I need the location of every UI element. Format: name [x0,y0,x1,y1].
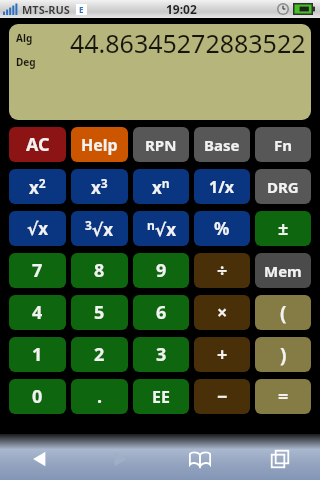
staticText: √x [27,217,49,240]
staticText: % [214,217,230,240]
button[interactable]: 7 [9,253,66,288]
button[interactable]: x2 [9,169,66,204]
button[interactable]: 1 [9,337,66,372]
button[interactable]: 4 [9,295,66,330]
staticText: ( [280,300,287,326]
staticText: MTS-RUS [22,2,70,17]
button[interactable]: Back [0,438,80,480]
staticText: + [217,342,228,367]
staticText: E [79,4,84,15]
staticText: 19:02 [166,1,197,17]
button[interactable]: Bookmarks [160,438,240,480]
staticText: 8 [94,258,105,283]
staticText: xn [152,175,170,199]
button[interactable]: 2 [71,337,128,372]
button[interactable]: 3√x [71,211,128,246]
staticText: . [97,384,103,409]
button[interactable]: Fn [255,127,311,162]
staticText: 1/x [209,176,235,198]
staticText: AC [26,132,50,157]
button[interactable]: √x [9,211,66,246]
staticText: 3 [156,342,167,367]
staticText: 5 [94,300,105,325]
staticText: 44.86345272883522 [70,26,306,60]
button[interactable]: . [71,379,128,414]
button[interactable]: xn [133,169,189,204]
staticText: 9 [156,258,167,283]
staticText: × [217,300,228,325]
staticText: 4 [32,300,43,325]
staticText: EE [152,386,170,408]
button[interactable]: 5 [71,295,128,330]
staticText: Mem [264,261,302,281]
button[interactable]: 6 [133,295,189,330]
button[interactable]: Mem [255,253,311,288]
button[interactable]: RPN [133,127,189,162]
button[interactable]: AC [9,127,66,162]
button[interactable]: Base [194,127,250,162]
button[interactable]: Tabs [240,438,320,480]
staticText: 7 [32,258,43,283]
button[interactable]: + [194,337,250,372]
staticText: x2 [29,175,46,199]
staticText: ) [280,342,287,368]
button[interactable]: Forward [80,438,160,480]
button[interactable]: 0 [9,379,66,414]
button[interactable]: ( [255,295,311,330]
button[interactable]: n√x [133,211,189,246]
staticText: 0 [32,384,43,409]
staticText: Deg [16,55,36,69]
button[interactable]: ± [255,211,311,246]
staticText: Alg [16,31,33,45]
button[interactable]: 1/x [194,169,250,204]
staticText: Base [204,135,240,155]
staticText: = [278,384,289,409]
button[interactable]: EE [133,379,189,414]
button[interactable]: DRG [255,169,311,204]
button[interactable]: ) [255,337,311,372]
button[interactable]: % [194,211,250,246]
button[interactable]: ÷ [194,253,250,288]
staticText: 1 [32,342,43,367]
button[interactable]: 8 [71,253,128,288]
button[interactable]: = [255,379,311,414]
staticText: n√x [147,217,176,241]
button[interactable]: × [194,295,250,330]
staticText: − [217,384,228,409]
button[interactable]: Help [71,127,128,162]
staticText: RPN [145,135,177,155]
staticText: 3√x [85,217,114,241]
staticText: ± [278,216,289,241]
button[interactable]: 9 [133,253,189,288]
staticText: Fn [274,135,292,155]
button[interactable]: 3 [133,337,189,372]
button[interactable]: − [194,379,250,414]
staticText: 2 [94,342,105,367]
staticText: DRG [267,177,299,197]
button[interactable]: x3 [71,169,128,204]
staticText: x3 [91,175,108,199]
staticText: 6 [156,300,167,325]
staticText: ÷ [217,258,228,283]
staticText: Help [81,134,118,156]
